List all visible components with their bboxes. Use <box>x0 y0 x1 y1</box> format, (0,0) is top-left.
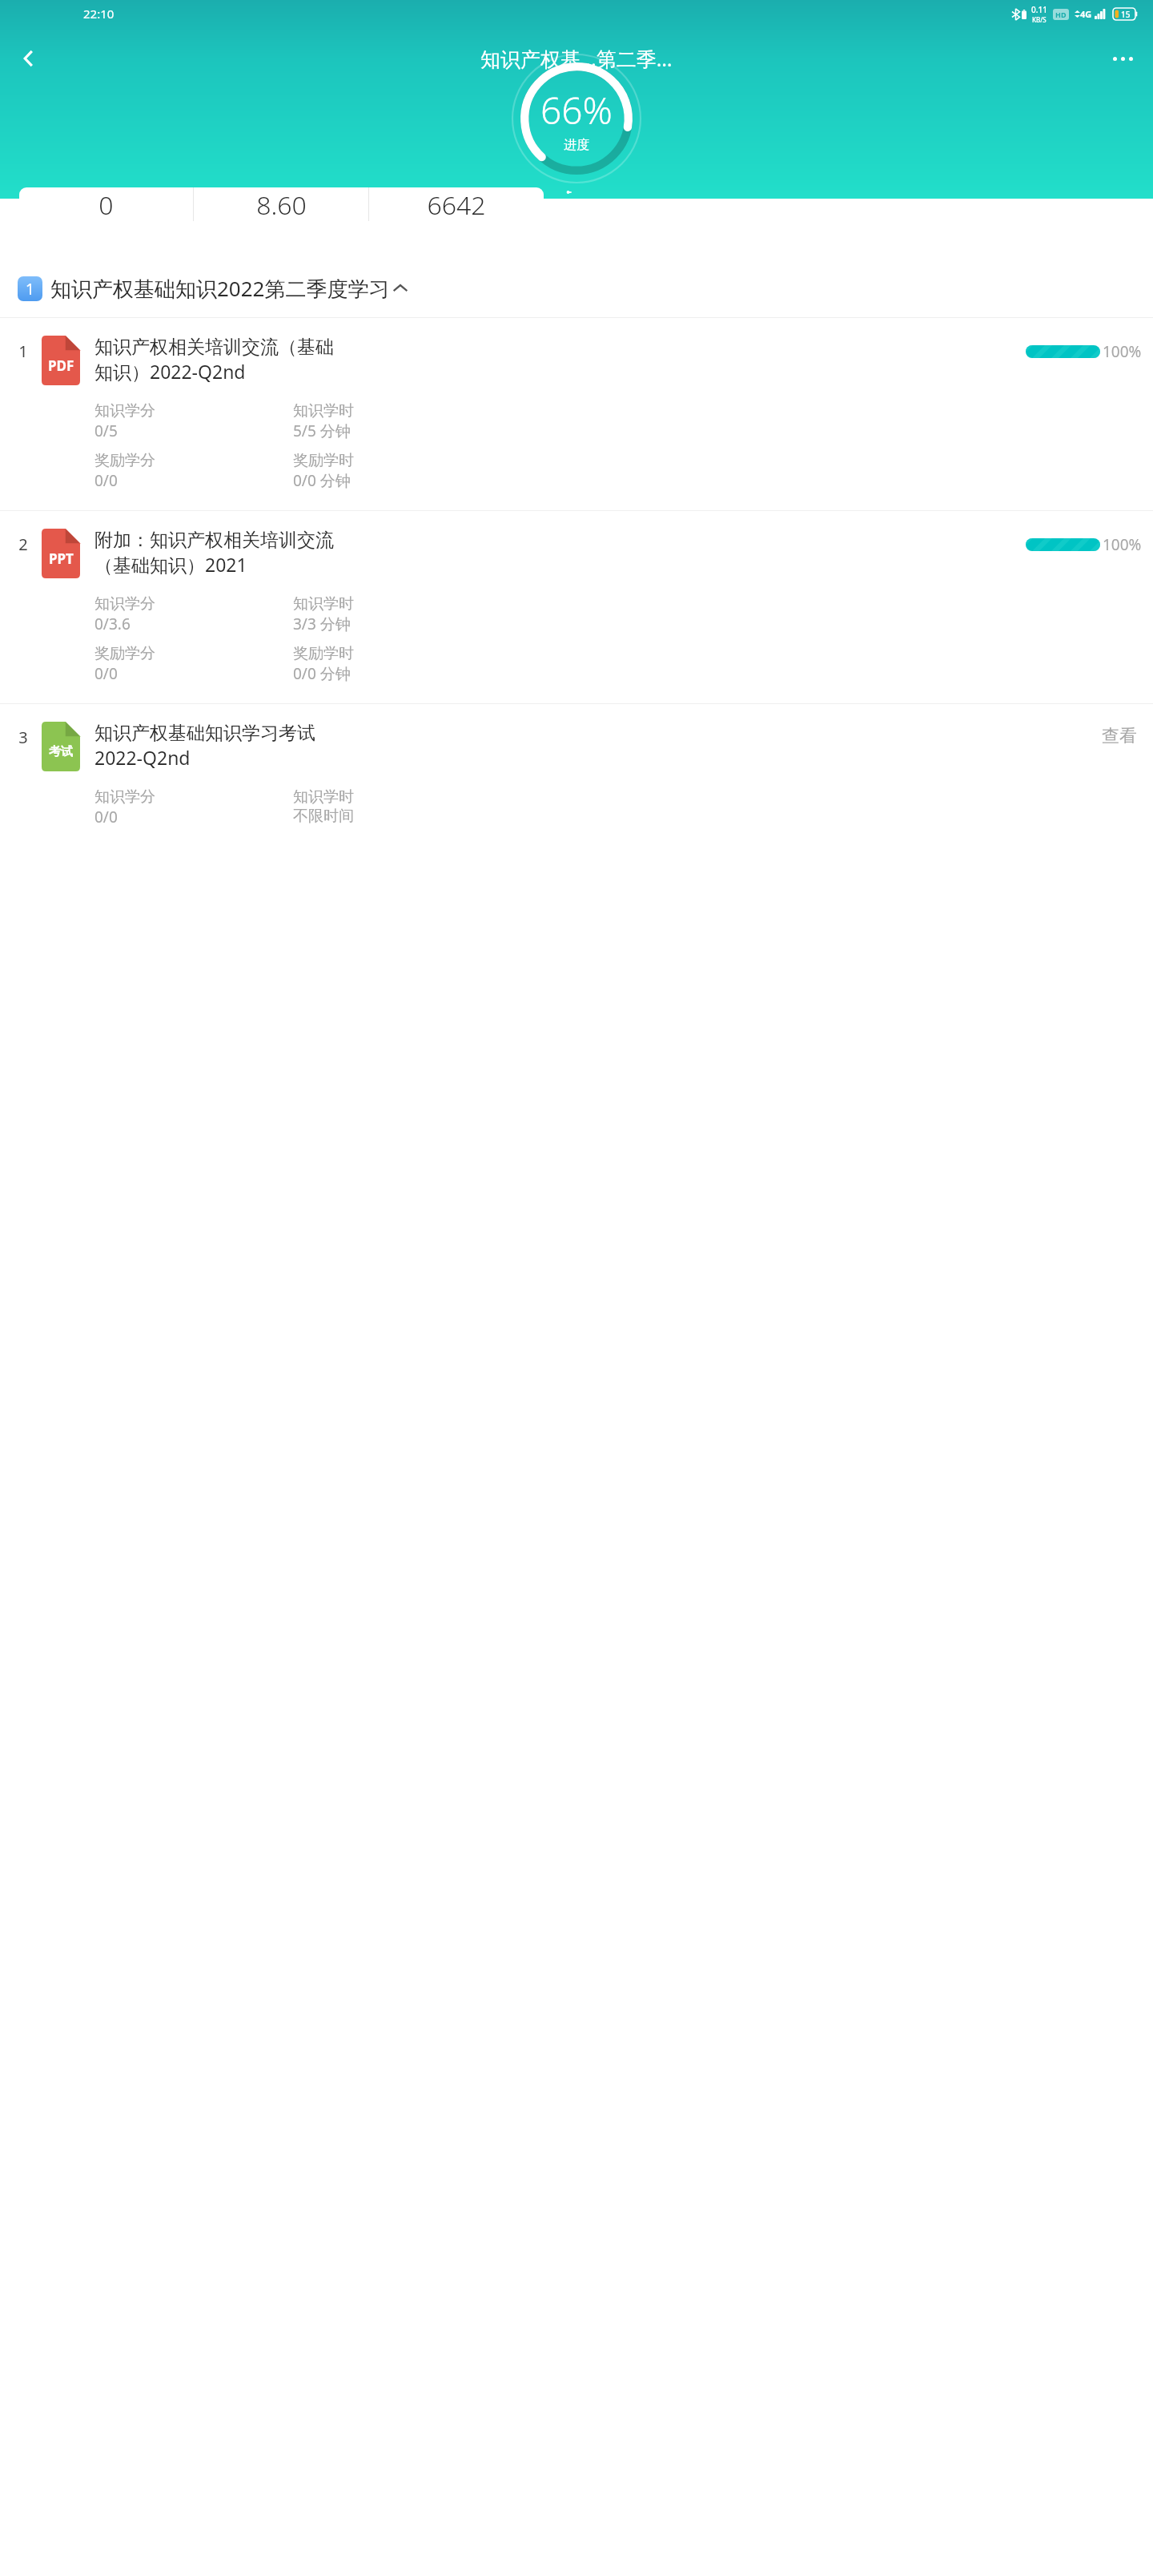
staticText: 知识学分 <box>94 401 155 421</box>
staticText: 知识学时 <box>293 787 354 807</box>
staticText: 3/3 分钟 <box>293 614 351 634</box>
staticText: 100% <box>1103 534 1142 555</box>
staticText: 0/0 <box>94 807 118 827</box>
staticText: 知识学时 <box>293 401 354 421</box>
staticText: 6642 <box>427 187 486 221</box>
staticText: 0/0 <box>94 663 118 684</box>
button[interactable]: 2 <box>0 511 1153 703</box>
staticText: 1 <box>26 279 34 300</box>
button[interactable]: 3 <box>0 704 1153 847</box>
staticText: 不限时间 <box>293 807 354 826</box>
staticText: 8.60 <box>256 187 307 221</box>
staticText: PPT <box>49 549 74 568</box>
staticText: 知识学分 <box>94 594 155 614</box>
staticText: 100% <box>1103 341 1142 362</box>
staticText: 知识学时 <box>293 594 354 614</box>
staticText: （基础知识）2021 <box>94 552 247 577</box>
staticText: 知识）2022-Q2nd <box>94 359 246 384</box>
button[interactable]: 0 <box>19 187 193 221</box>
staticText: 0/5 <box>94 421 118 441</box>
button[interactable]: 查看 <box>1097 723 1142 749</box>
staticText: 5/5 分钟 <box>293 421 351 441</box>
staticText: 考试 <box>49 744 73 759</box>
staticText: 奖励学时 <box>293 644 354 663</box>
button[interactable]: 1 <box>0 318 1153 510</box>
button[interactable]: 更多 <box>1100 36 1145 81</box>
staticText: 知识产权基…第二季… <box>480 45 673 72</box>
staticText: 2022-Q2nd <box>94 745 191 770</box>
staticText: PDF <box>48 356 74 375</box>
button[interactable]: 返回 <box>6 36 51 81</box>
staticText: 0.11 <box>1031 4 1047 15</box>
button[interactable]: 1 <box>0 260 1153 317</box>
staticText: 2 <box>11 533 35 555</box>
staticText: 查看 <box>1102 725 1137 747</box>
staticText: 0/0 分钟 <box>293 663 351 684</box>
button[interactable]: 6642 <box>369 187 544 221</box>
staticText: 奖励学分 <box>94 451 155 470</box>
staticText: 0/3.6 <box>94 614 131 634</box>
staticText: 附加：知识产权相关培训交流 <box>94 529 334 552</box>
staticText: 0/0 分钟 <box>293 470 351 491</box>
staticText: HD <box>1055 10 1067 19</box>
staticText: 4G <box>1080 8 1092 20</box>
staticText: 知识产权基础知识学习考试 <box>94 722 315 745</box>
staticText: 1 <box>11 340 35 362</box>
staticText: 奖励学分 <box>94 644 155 663</box>
staticText: 进度 <box>564 137 589 153</box>
staticText: 66% <box>540 85 613 135</box>
staticText: 0/0 <box>94 470 118 491</box>
staticText: 知识产权基础知识2022第二季度学习 <box>50 274 390 303</box>
staticText: 知识学分 <box>94 787 155 807</box>
staticText: KB/S <box>1032 15 1047 24</box>
staticText: 15 <box>1121 9 1131 20</box>
button[interactable]: 8.60 <box>194 187 368 221</box>
staticText: 22:10 <box>83 6 114 22</box>
staticText: 0 <box>98 187 114 221</box>
staticText: 3 <box>11 727 35 748</box>
staticText: 奖励学时 <box>293 451 354 470</box>
staticText: 知识产权相关培训交流（基础 <box>94 336 334 359</box>
